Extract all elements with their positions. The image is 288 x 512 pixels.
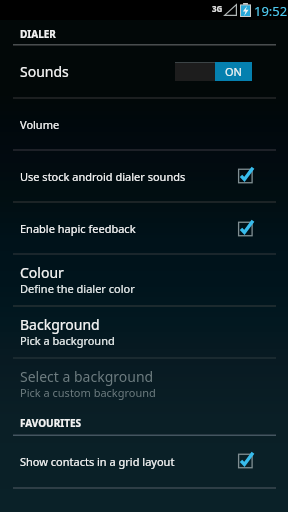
staticText: Pick a custom background [20,385,156,400]
staticText: 19:52 [254,2,288,20]
staticText: Colour [20,263,64,282]
staticText: Show contacts in a grid layout [20,454,175,469]
staticText: 3G [212,3,223,14]
staticText: Sounds [20,62,69,81]
staticText: Background [20,315,100,334]
staticText: Define the dialer color [20,281,135,296]
staticText: Pick a background [20,333,115,348]
button[interactable]: Use stock android dialer sounds [0,150,288,202]
button[interactable]: Select a background [0,358,288,410]
staticText: Select a background [20,367,154,386]
button[interactable]: Colour [0,254,288,305]
staticText: Use stock android dialer sounds [20,169,186,184]
button[interactable]: Volume [0,98,288,150]
staticText: Volume [20,117,60,132]
button[interactable]: Enable hapic feedback [0,202,288,255]
staticText: ON [225,64,242,79]
button[interactable]: Background [0,306,288,358]
button[interactable]: Show contacts in a grid layout [0,434,288,488]
staticText: DIALER [20,27,56,41]
staticText: FAVOURITES [20,416,82,430]
staticText: Enable hapic feedback [20,221,136,236]
button[interactable]: Sounds [0,45,288,98]
